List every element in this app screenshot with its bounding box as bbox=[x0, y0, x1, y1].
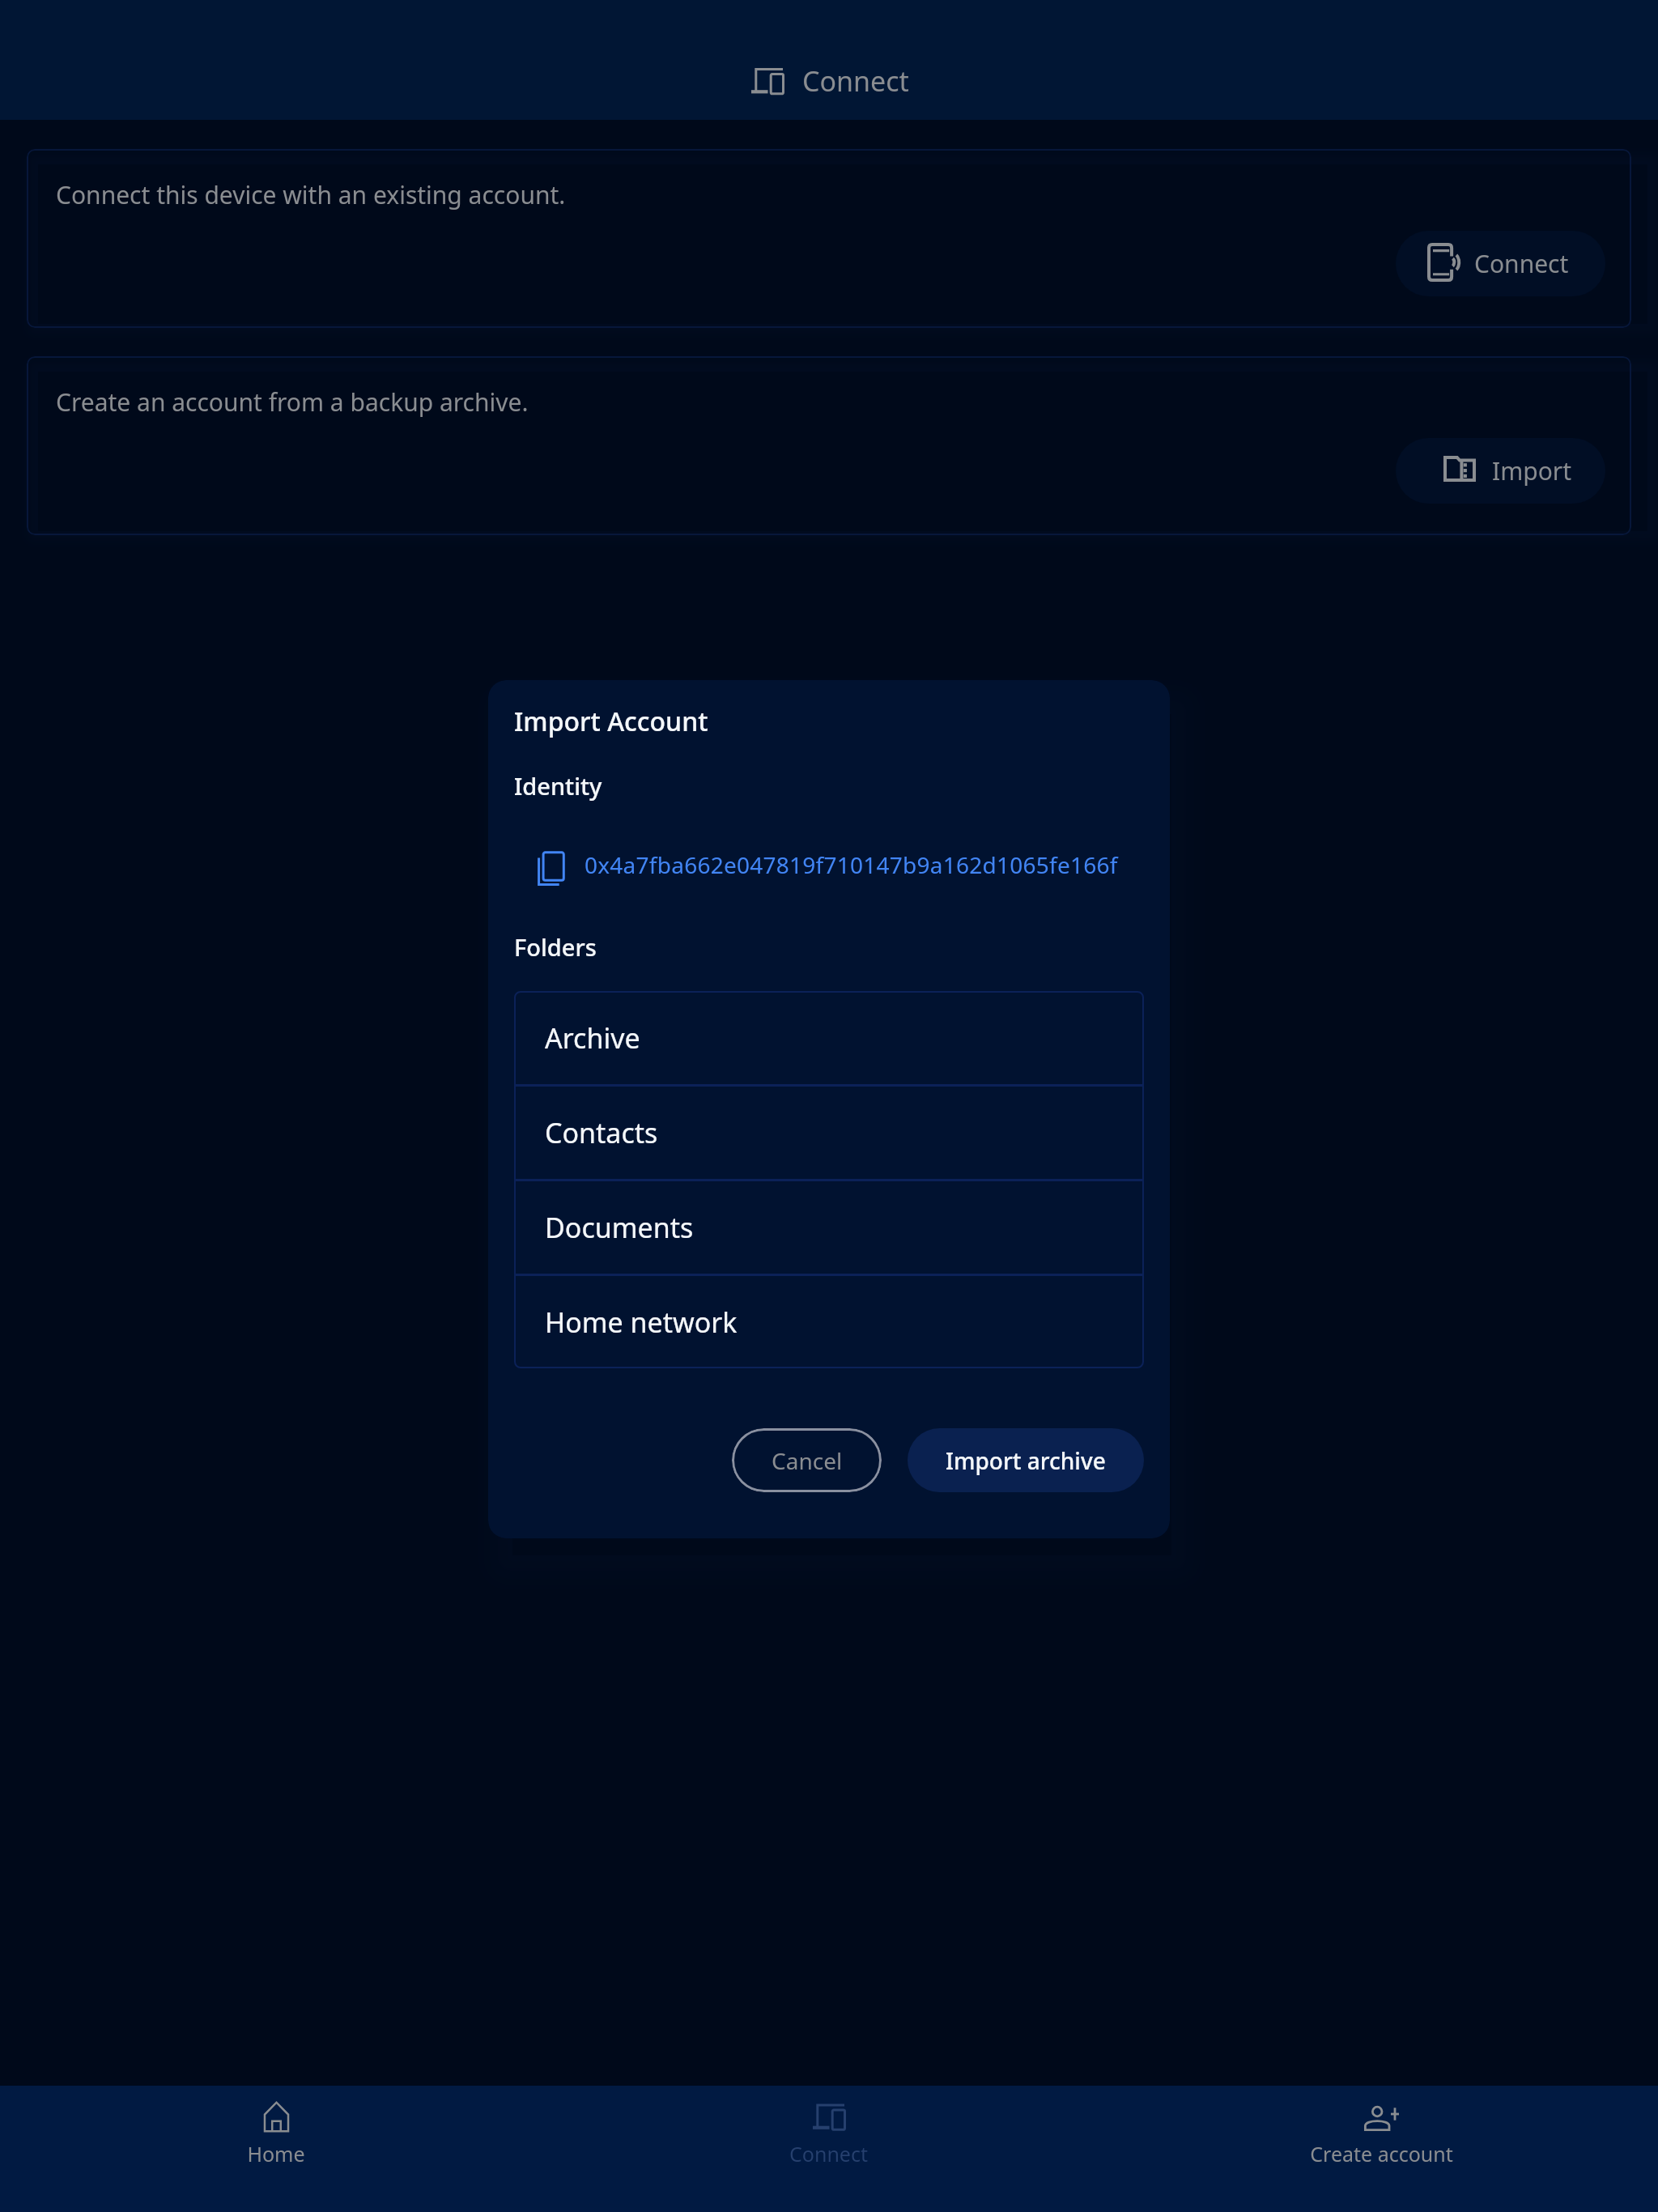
button[interactable]: Cancel bbox=[732, 1428, 882, 1492]
staticText: Cancel bbox=[772, 1445, 843, 1476]
staticText: Create account bbox=[1310, 2140, 1453, 2167]
button[interactable]: Import archive bbox=[908, 1428, 1144, 1492]
staticText: Documents bbox=[545, 1209, 694, 1246]
staticText: Connect bbox=[1474, 247, 1569, 280]
other: Copy identity address bbox=[536, 852, 564, 886]
button[interactable]: Connect bbox=[1396, 231, 1605, 296]
button[interactable]: Import bbox=[1396, 438, 1605, 504]
staticText: Home bbox=[247, 2140, 305, 2167]
staticText: Contacts bbox=[545, 1114, 658, 1151]
button[interactable]: Documents bbox=[514, 1181, 1144, 1274]
staticText: Folders bbox=[514, 931, 597, 963]
staticText: Connect this device with an existing acc… bbox=[56, 178, 566, 211]
staticText: Connect bbox=[802, 62, 909, 100]
staticText: Archive bbox=[545, 1019, 640, 1057]
staticText: Import archive bbox=[946, 1445, 1106, 1476]
button[interactable]: Archive bbox=[514, 991, 1144, 1084]
staticText: Import Account bbox=[514, 704, 708, 739]
button[interactable]: Copy identity address bbox=[514, 839, 1144, 891]
staticText: Identity bbox=[514, 770, 602, 802]
staticText: Home network bbox=[545, 1304, 738, 1341]
button[interactable]: Home network bbox=[514, 1276, 1144, 1368]
button[interactable]: Home bbox=[0, 2086, 552, 2212]
button[interactable]: Connect bbox=[552, 2086, 1105, 2212]
staticText: Connect bbox=[789, 2140, 868, 2167]
button[interactable]: Contacts bbox=[514, 1087, 1144, 1179]
staticText: 0x4a7fba662e047819f710147b9a162d1065fe16… bbox=[585, 849, 1118, 880]
staticText: Import bbox=[1492, 454, 1572, 487]
staticText: Create an account from a backup archive. bbox=[56, 385, 529, 419]
other: Devices bbox=[751, 65, 784, 97]
button[interactable]: Create account bbox=[1105, 2086, 1658, 2212]
